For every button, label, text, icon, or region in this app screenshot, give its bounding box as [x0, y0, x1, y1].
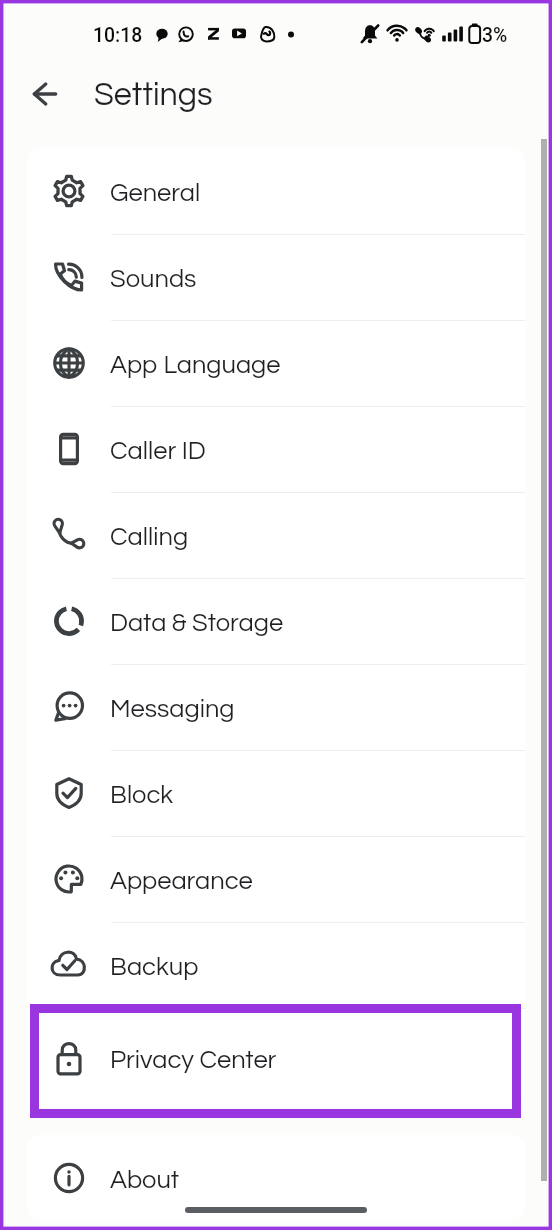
staticText: 10:18: [93, 24, 143, 47]
staticText: Settings: [94, 79, 213, 112]
staticText: App Language: [110, 352, 281, 378]
staticText: Caller ID: [110, 438, 206, 464]
staticText: About: [110, 1167, 180, 1193]
button[interactable]: About: [27, 1135, 525, 1221]
button[interactable]: Data & Storage: [27, 578, 525, 664]
button[interactable]: Block: [27, 750, 525, 836]
button[interactable]: Privacy Center: [27, 1008, 525, 1108]
button[interactable]: Caller ID: [27, 406, 525, 492]
button[interactable]: Calling: [27, 492, 525, 578]
staticText: Data & Storage: [110, 610, 284, 636]
button[interactable]: Sounds: [27, 234, 525, 320]
button[interactable]: Backup: [27, 922, 525, 1008]
button[interactable]: General: [27, 148, 525, 234]
staticText: Privacy Center: [110, 1047, 277, 1073]
staticText: Sounds: [110, 266, 197, 292]
staticText: Appearance: [110, 868, 253, 894]
button[interactable]: Appearance: [27, 836, 525, 922]
staticText: Block: [110, 782, 174, 808]
staticText: Calling: [110, 524, 189, 550]
staticText: General: [110, 180, 201, 206]
button[interactable]: Back: [21, 70, 69, 118]
staticText: 3%: [482, 24, 508, 47]
button[interactable]: Messaging: [27, 664, 525, 750]
staticText: Backup: [110, 954, 199, 980]
staticText: Messaging: [110, 696, 235, 722]
button[interactable]: App Language: [27, 320, 525, 406]
